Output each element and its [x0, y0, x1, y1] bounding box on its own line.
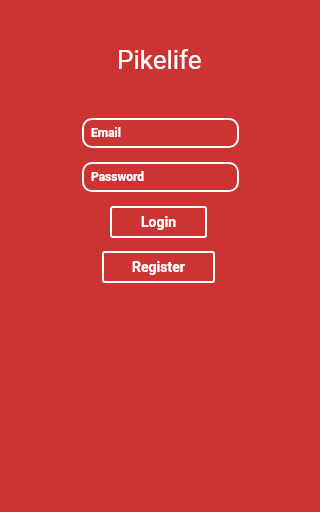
button[interactable]: Password	[82, 162, 239, 192]
staticText: Pikelife	[117, 45, 202, 75]
button[interactable]: Register	[102, 251, 215, 283]
staticText: Login	[141, 214, 177, 230]
button[interactable]: Login	[110, 206, 207, 238]
staticText: Password	[91, 170, 145, 184]
staticText: Email	[91, 126, 121, 140]
staticText: Register	[132, 259, 185, 275]
button[interactable]: Email	[82, 118, 239, 148]
